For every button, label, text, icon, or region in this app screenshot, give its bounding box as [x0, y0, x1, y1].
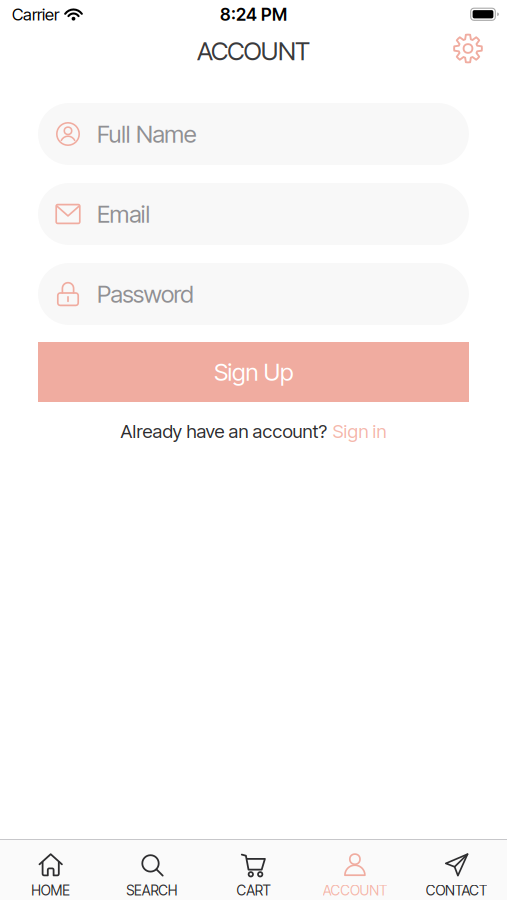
button[interactable]: SEARCH	[101, 852, 203, 899]
staticText: Sign Up	[214, 357, 293, 386]
staticText: SEARCH	[126, 882, 178, 899]
staticText: Email	[97, 199, 150, 228]
button[interactable]: Sign Up	[38, 342, 469, 402]
button[interactable]: CART	[203, 852, 304, 899]
staticText: Sign in	[332, 420, 386, 443]
staticText: 8:24 PM	[220, 4, 287, 25]
staticText: HOME	[31, 882, 70, 899]
staticText: Full Name	[97, 119, 197, 148]
button[interactable]: Full Name	[0, 103, 507, 165]
button[interactable]: Sign in	[332, 420, 386, 443]
staticText: Carrier	[12, 4, 59, 25]
button[interactable]: HOME	[0, 852, 101, 899]
staticText: ACCOUNT	[197, 36, 310, 66]
button[interactable]: Password	[0, 263, 507, 325]
staticText: Password	[97, 279, 193, 308]
button[interactable]: Settings	[453, 33, 483, 63]
staticText: Already have an account?	[120, 420, 327, 443]
button[interactable]: CONTACT	[406, 852, 507, 899]
staticText: CONTACT	[426, 882, 487, 899]
button[interactable]: ACCOUNT	[304, 852, 406, 899]
staticText: CART	[236, 882, 270, 899]
staticText: ACCOUNT	[323, 882, 387, 899]
button[interactable]: Email	[0, 183, 507, 245]
